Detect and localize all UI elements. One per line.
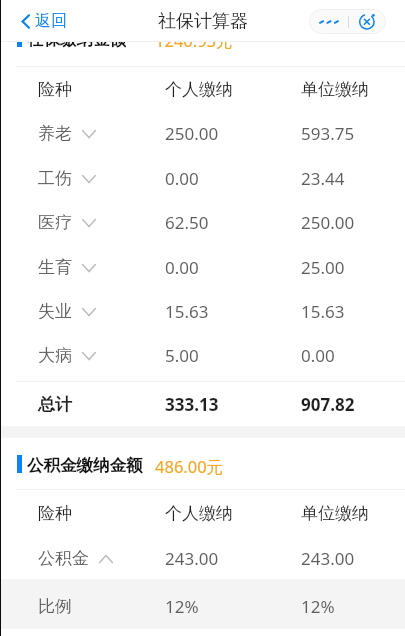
button[interactable]: 险种 [0, 77, 405, 101]
staticText: 15.63 [301, 300, 345, 323]
button[interactable]: 工伤 [0, 166, 405, 190]
staticText: 250.00 [165, 122, 219, 145]
staticText: 23.44 [301, 167, 345, 190]
staticText: 养老 [38, 123, 72, 144]
staticText: 社保缴纳金额 [27, 29, 126, 49]
staticText: 生育 [38, 257, 72, 278]
staticText: 593.75 [301, 122, 355, 145]
button[interactable]: 返回 [16, 7, 71, 35]
staticText: 62.50 [165, 211, 209, 234]
staticText: 1240.95元 [155, 29, 233, 49]
button[interactable]: More options [309, 9, 347, 34]
staticText: 社保计算器 [158, 10, 248, 33]
staticText: 单位缴纳 [301, 79, 369, 100]
staticText: 个人缴纳 [165, 79, 233, 100]
staticText: 公积金 [38, 548, 89, 569]
staticText: 比例 [38, 596, 72, 617]
staticText: 486.00元 [155, 455, 224, 475]
staticText: 0.00 [165, 167, 199, 190]
staticText: 工伤 [38, 168, 72, 189]
staticText: 险种 [38, 503, 72, 524]
staticText: 243.00 [301, 547, 355, 570]
button[interactable]: 养老 [0, 121, 405, 145]
button[interactable]: 医疗 [0, 210, 405, 234]
staticText: 总计 [38, 394, 72, 415]
staticText: 907.82 [301, 393, 355, 416]
staticText: 333.13 [165, 393, 219, 416]
staticText: 单位缴纳 [301, 503, 369, 524]
staticText: 12% [165, 595, 199, 618]
button[interactable]: 失业 [0, 299, 405, 323]
button[interactable]: 公积金 [0, 546, 405, 570]
staticText: 医疗 [38, 212, 72, 233]
button[interactable]: 险种 [0, 501, 405, 525]
staticText: 险种 [38, 79, 72, 100]
button[interactable]: 大病 [0, 343, 405, 367]
staticText: 返回 [35, 11, 67, 31]
staticText: 5.00 [165, 344, 199, 367]
staticText: 25.00 [301, 256, 345, 279]
staticText: 失业 [38, 301, 72, 322]
button[interactable]: Close [348, 9, 386, 34]
staticText: 0.00 [165, 256, 199, 279]
button[interactable]: 总计 [0, 392, 405, 416]
staticText: 12% [301, 595, 335, 618]
staticText: 大病 [38, 345, 72, 366]
staticText: 250.00 [301, 211, 355, 234]
staticText: 15.63 [165, 300, 209, 323]
button[interactable]: 生育 [0, 255, 405, 279]
button[interactable]: 比例 [0, 594, 405, 618]
staticText: 个人缴纳 [165, 503, 233, 524]
staticText: 公积金缴纳金额 [27, 455, 143, 475]
staticText: 0.00 [301, 344, 335, 367]
staticText: 243.00 [165, 547, 219, 570]
